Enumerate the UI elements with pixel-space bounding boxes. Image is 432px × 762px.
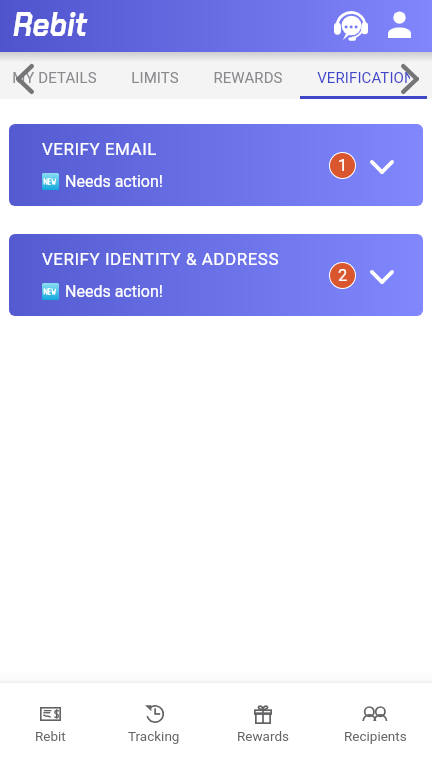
- staticText: Needs action!: [65, 282, 163, 301]
- button[interactable]: LIMITS: [114, 52, 196, 99]
- button[interactable]: REWARDS: [196, 52, 300, 99]
- staticText: Rebit: [35, 728, 66, 744]
- button[interactable]: Scroll tabs right: [386, 52, 432, 99]
- button[interactable]: VERIFICATION: [300, 52, 427, 99]
- button[interactable]: Customer support chat: [326, 0, 375, 52]
- staticText: LIMITS: [131, 69, 179, 87]
- button[interactable]: Rewards: [210, 683, 316, 762]
- button[interactable]: MY DETAILS: [0, 52, 114, 99]
- button[interactable]: Tracking: [101, 683, 207, 762]
- staticText: Tracking: [128, 728, 180, 744]
- staticText: Needs action!: [65, 172, 163, 191]
- button[interactable]: Profile: [377, 0, 421, 52]
- staticText: MY DETAILS: [12, 69, 97, 87]
- staticText: Rewards: [237, 728, 289, 744]
- button[interactable]: Rebit: [0, 683, 103, 762]
- staticText: 2: [338, 266, 348, 285]
- staticText: 1: [338, 156, 348, 175]
- staticText: Rebit: [13, 3, 87, 46]
- staticText: VERIFY IDENTITY & ADDRESS: [42, 249, 279, 269]
- staticText: REWARDS: [213, 69, 283, 87]
- staticText: VERIFICATION: [317, 69, 410, 87]
- staticText: VERIFY EMAIL: [42, 139, 157, 159]
- button[interactable]: Recipients: [322, 683, 428, 762]
- staticText: Recipients: [344, 728, 407, 744]
- button[interactable]: VERIFY IDENTITY & ADDRESS: [9, 234, 423, 316]
- button[interactable]: VERIFY EMAIL: [9, 124, 423, 206]
- button[interactable]: Scroll tabs left: [0, 52, 46, 99]
